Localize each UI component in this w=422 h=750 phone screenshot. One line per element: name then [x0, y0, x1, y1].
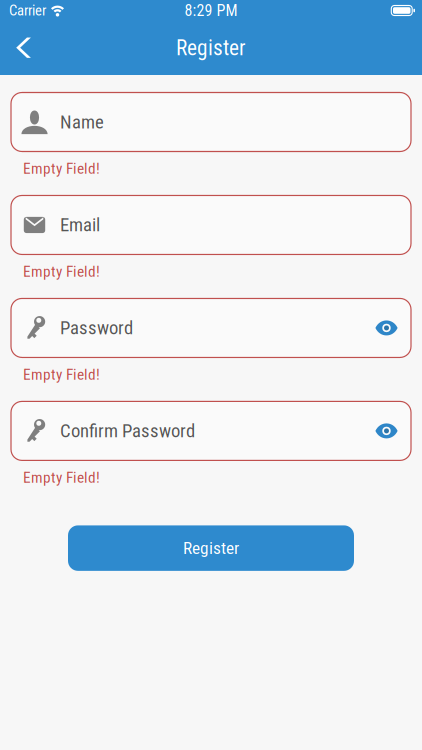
staticText: Name [60, 111, 104, 133]
staticText: Register [183, 538, 239, 558]
button[interactable]: Password [11, 298, 411, 357]
staticText: Confirm Password [60, 420, 195, 442]
staticText: Empty Field! [23, 365, 100, 383]
staticText: Email [60, 214, 100, 236]
staticText: Password [60, 317, 133, 339]
staticText: Empty Field! [23, 262, 100, 280]
button[interactable]: Email [11, 195, 411, 254]
button[interactable]: Register [68, 525, 354, 571]
button[interactable]: Name [11, 92, 411, 151]
staticText: Empty Field! [23, 159, 100, 177]
staticText: Register [176, 35, 246, 60]
button[interactable]: Confirm Password [11, 401, 411, 460]
staticText: 8:29 PM [184, 1, 237, 20]
button[interactable]: Back [0, 27, 48, 68]
staticText: Empty Field! [23, 468, 100, 486]
staticText: Carrier [9, 2, 46, 19]
